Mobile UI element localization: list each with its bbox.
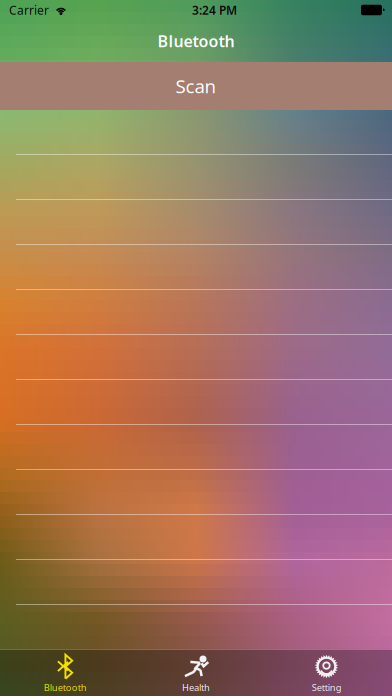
button[interactable]: Scan [0, 62, 392, 110]
staticText: Bluetooth [157, 30, 234, 52]
staticText: 3:24 PM [192, 2, 237, 18]
staticText: Scan [175, 74, 216, 98]
button[interactable]: Setting [261, 649, 392, 696]
button[interactable]: Bluetooth [0, 649, 131, 696]
staticText: Bluetooth [44, 681, 87, 694]
staticText: Carrier [9, 2, 49, 18]
staticText: Setting [312, 681, 342, 694]
button[interactable]: Health [131, 649, 261, 696]
staticText: Health [182, 681, 210, 694]
